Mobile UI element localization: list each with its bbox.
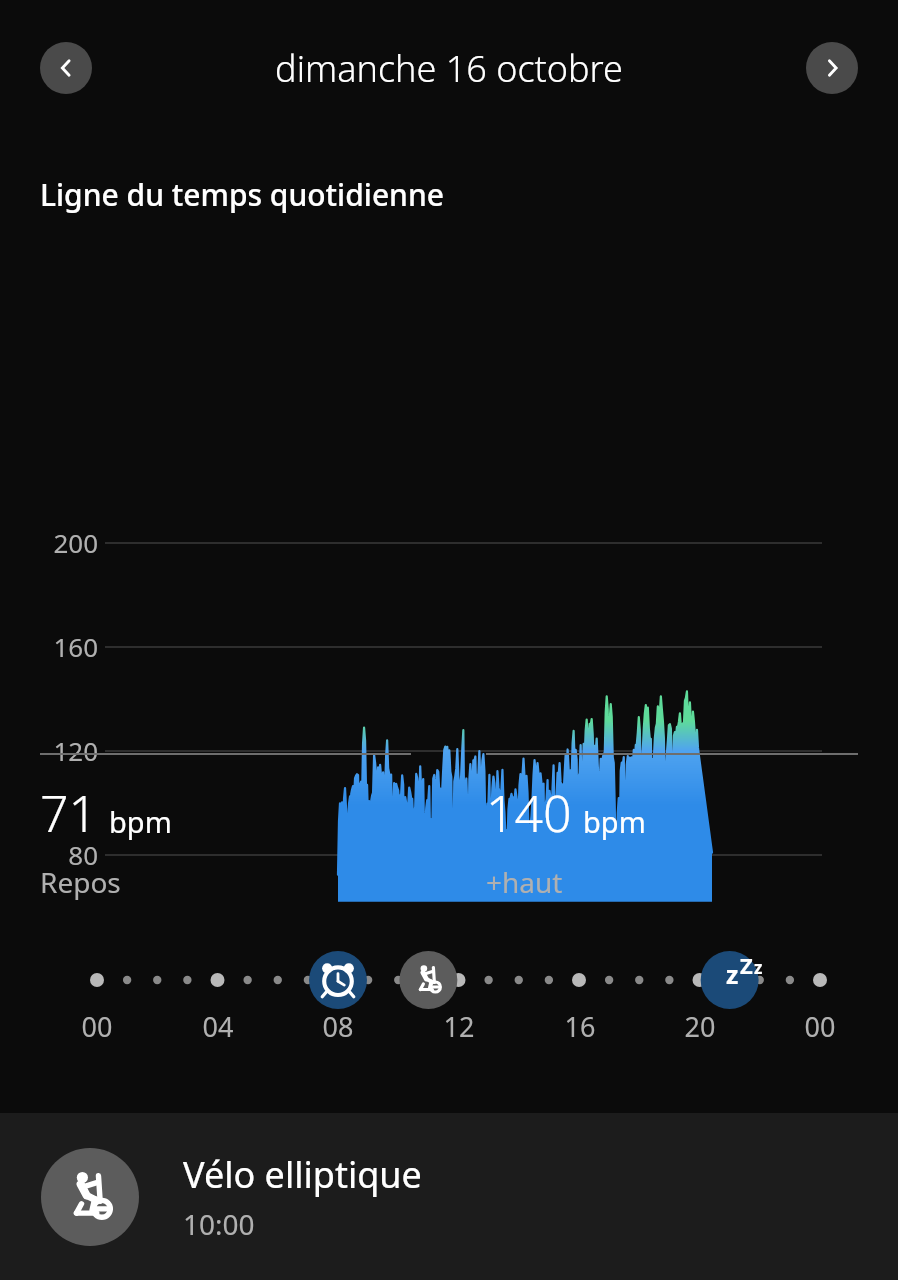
button[interactable]: Vélo elliptique: [0, 1113, 898, 1280]
staticText: bpm: [583, 802, 646, 841]
staticText: Vélo elliptique: [183, 1150, 422, 1199]
staticText: 120: [40, 733, 98, 768]
staticText: z: [726, 957, 739, 991]
staticText: 08: [308, 1008, 368, 1045]
staticText: 10:00: [183, 1205, 255, 1243]
staticText: 00: [67, 1008, 127, 1045]
button[interactable]: 140: [486, 753, 858, 901]
staticText: 200: [40, 525, 98, 560]
button[interactable]: 71: [40, 753, 411, 901]
staticText: bpm: [109, 802, 172, 841]
staticText: Ligne du temps quotidienne: [40, 174, 444, 215]
staticText: 20: [670, 1008, 730, 1045]
button[interactable]: Jour suivant: [806, 42, 858, 94]
button[interactable]: Jour précédent: [40, 42, 92, 94]
staticText: dimanche 16 octobre: [275, 44, 623, 93]
staticText: Z: [740, 950, 753, 980]
staticText: 12: [429, 1008, 489, 1045]
staticText: 16: [550, 1008, 610, 1045]
staticText: z: [754, 956, 763, 979]
staticText: 71: [40, 779, 98, 847]
staticText: 140: [486, 779, 572, 847]
staticText: 160: [40, 629, 98, 664]
staticText: +haut: [486, 863, 563, 901]
staticText: 04: [188, 1008, 248, 1045]
staticText: 00: [790, 1008, 850, 1045]
staticText: 80: [40, 837, 98, 872]
staticText: Repos: [40, 863, 121, 901]
